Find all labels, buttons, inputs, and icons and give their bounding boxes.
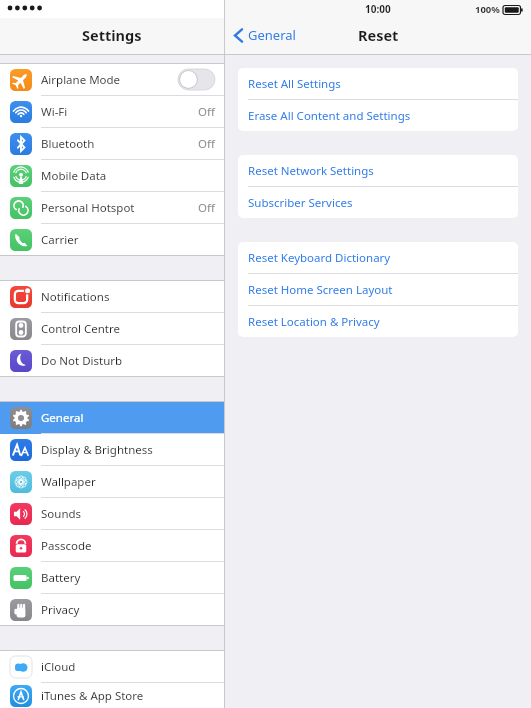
staticText: Subscriber Services: [248, 195, 353, 211]
button[interactable]: Notifications: [0, 281, 224, 313]
button[interactable]: Subscriber Services: [238, 187, 518, 218]
button[interactable]: Personal Hotspot: [0, 192, 224, 224]
staticText: Settings: [82, 25, 142, 45]
staticText: Sounds: [41, 506, 215, 522]
staticText: Wi-Fi: [41, 104, 198, 120]
staticText: Battery: [41, 570, 215, 586]
button[interactable]: General: [230, 23, 299, 47]
staticText: Carrier: [41, 232, 215, 248]
button[interactable]: Display & Brightness: [0, 434, 224, 466]
staticText: Off: [198, 200, 215, 216]
staticText: Off: [198, 136, 215, 152]
staticText: Reset All Settings: [248, 76, 341, 92]
button[interactable]: Airplane Mode: [0, 64, 224, 96]
button[interactable]: Battery: [0, 562, 224, 594]
staticText: Personal Hotspot: [41, 200, 198, 216]
staticText: Do Not Disturb: [41, 353, 215, 369]
staticText: Wallpaper: [41, 474, 215, 490]
staticText: Reset Location & Privacy: [248, 314, 380, 330]
staticText: Reset Keyboard Dictionary: [248, 250, 391, 266]
staticText: General: [41, 410, 215, 426]
staticText: Passcode: [41, 538, 215, 554]
button[interactable]: Reset Keyboard Dictionary: [238, 242, 518, 273]
button[interactable]: Privacy: [0, 594, 224, 625]
button[interactable]: Mobile Data: [0, 160, 224, 192]
staticText: Control Centre: [41, 321, 215, 337]
button[interactable]: Reset Home Screen Layout: [238, 274, 518, 305]
staticText: Erase All Content and Settings: [248, 108, 411, 124]
button[interactable]: Reset Location & Privacy: [238, 306, 518, 337]
staticText: Reset Network Settings: [248, 163, 374, 179]
button[interactable]: General: [0, 402, 224, 434]
button[interactable]: Sounds: [0, 498, 224, 530]
button[interactable]: Passcode: [0, 530, 224, 562]
button[interactable]: Do Not Disturb: [0, 345, 224, 376]
button[interactable]: Control Centre: [0, 313, 224, 345]
button[interactable]: Carrier: [0, 224, 224, 255]
staticText: Mobile Data: [41, 168, 215, 184]
staticText: General: [248, 26, 296, 44]
button[interactable]: Bluetooth: [0, 128, 224, 160]
button[interactable]: Wi-Fi: [0, 96, 224, 128]
staticText: Privacy: [41, 602, 215, 618]
staticText: 100%: [475, 3, 500, 16]
staticText: Notifications: [41, 289, 215, 305]
button[interactable]: iCloud: [0, 651, 224, 683]
staticText: Bluetooth: [41, 136, 198, 152]
button[interactable]: Erase All Content and Settings: [238, 100, 518, 131]
button[interactable]: iTunes & App Store: [0, 683, 224, 708]
staticText: iCloud: [41, 659, 215, 675]
button[interactable]: Reset Network Settings: [238, 155, 518, 186]
staticText: iTunes & App Store: [41, 688, 215, 704]
staticText: 10:00: [365, 2, 391, 16]
staticText: Reset: [358, 25, 399, 45]
button[interactable]: Reset All Settings: [238, 68, 518, 99]
staticText: Reset Home Screen Layout: [248, 282, 393, 298]
staticText: Off: [198, 104, 215, 120]
staticText: Display & Brightness: [41, 442, 215, 458]
button[interactable]: Wallpaper: [0, 466, 224, 498]
staticText: Airplane Mode: [41, 72, 178, 88]
